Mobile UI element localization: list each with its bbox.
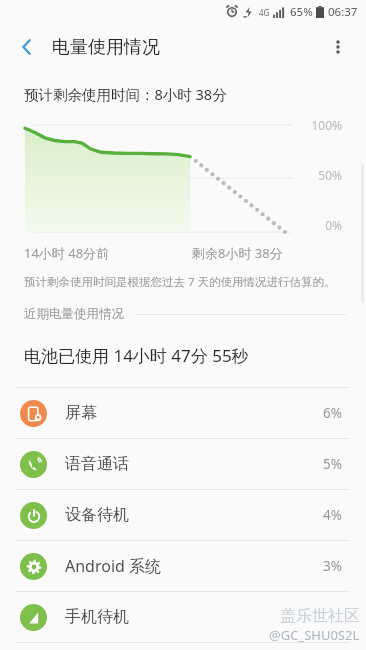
button[interactable]: 手机待机 (0, 592, 366, 642)
button[interactable]: More options (318, 27, 358, 67)
staticText: 4% (323, 506, 342, 524)
button[interactable]: Android 系统 (0, 541, 366, 591)
staticText: 65% (290, 4, 313, 20)
staticText: 预计剩余使用时间是根据您过去 7 天的使用情况进行估算的。 (24, 274, 336, 290)
staticText: 06:37 (328, 4, 358, 20)
staticText: 5% (323, 455, 342, 473)
button[interactable]: 语音通话 (0, 439, 366, 489)
staticText: 剩余8小时 38分 (192, 244, 283, 262)
staticText: 0% (325, 217, 342, 233)
staticText: 预计剩余使用时间：8小时 38分 (24, 84, 227, 104)
button[interactable]: 设备待机 (0, 490, 366, 540)
staticText: 100% (311, 117, 342, 133)
staticText: 3% (323, 557, 342, 575)
staticText: 屏幕 (65, 403, 97, 423)
staticText: @GC_SHU0S2L (269, 626, 360, 644)
staticText: 4G (259, 7, 270, 18)
staticText: Android 系统 (65, 555, 162, 577)
staticText: 手机待机 (65, 607, 129, 627)
staticText: 语音通话 (65, 454, 129, 474)
staticText: 50% (318, 167, 342, 183)
staticText: 14小时 48分前 (24, 244, 110, 262)
staticText: 近期电量使用情况 (24, 306, 124, 322)
button[interactable]: 屏幕 (0, 388, 366, 438)
staticText: 盖乐世社区 (280, 606, 360, 626)
staticText: 电池已使用 14小时 47分 55秒 (24, 344, 249, 367)
staticText: 电量使用情况 (52, 36, 160, 59)
staticText: 6% (323, 404, 342, 422)
button[interactable]: Back (8, 28, 46, 66)
staticText: 设备待机 (65, 505, 129, 525)
